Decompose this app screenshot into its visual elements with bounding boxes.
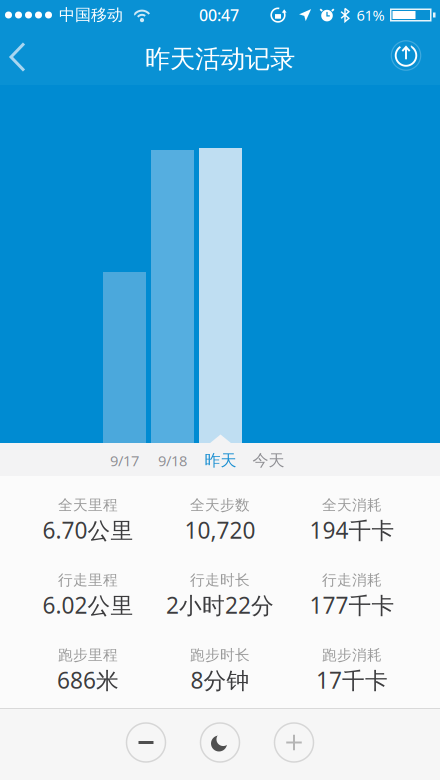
- staticText: 6.70公里: [42, 515, 133, 545]
- staticText: 194千卡: [309, 515, 394, 545]
- staticText: 昨天活动记录: [145, 43, 295, 74]
- staticText: 17千卡: [316, 665, 388, 695]
- staticText: 177千卡: [309, 590, 394, 620]
- staticText: 8分钟: [190, 665, 249, 695]
- button[interactable]: 今天: [244, 444, 292, 477]
- staticText: 2小时22分: [166, 590, 274, 620]
- staticText: 行走里程: [58, 571, 118, 589]
- staticText: 9/18: [158, 451, 187, 470]
- staticText: 全天里程: [58, 496, 118, 514]
- staticText: 今天: [252, 451, 284, 470]
- staticText: 9/17: [110, 451, 139, 470]
- staticText: 10,720: [184, 515, 255, 545]
- button[interactable]: 9/18: [148, 444, 196, 477]
- staticText: 跑步时长: [190, 646, 250, 664]
- staticText: 686米: [57, 665, 119, 695]
- staticText: 61%: [356, 5, 384, 25]
- staticText: 中国移动: [59, 5, 123, 25]
- staticText: 00:47: [199, 4, 239, 26]
- staticText: 行走时长: [190, 571, 250, 589]
- staticText: 跑步里程: [58, 646, 118, 664]
- button[interactable]: [274, 723, 313, 762]
- button[interactable]: [200, 723, 239, 762]
- button[interactable]: 9/17: [100, 444, 148, 477]
- button[interactable]: [388, 37, 424, 73]
- staticText: 昨天: [204, 451, 236, 470]
- button[interactable]: [0, 39, 44, 74]
- staticText: 6.02公里: [42, 590, 133, 620]
- staticText: 全天步数: [190, 496, 250, 514]
- button[interactable]: [126, 723, 165, 762]
- staticText: 全天消耗: [322, 496, 382, 514]
- staticText: 行走消耗: [322, 571, 382, 589]
- button[interactable]: 昨天: [196, 444, 244, 477]
- staticText: 跑步消耗: [322, 646, 382, 664]
